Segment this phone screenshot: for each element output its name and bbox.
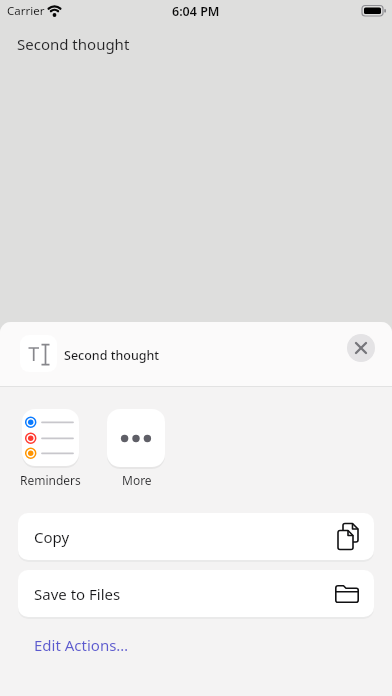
staticText: Copy: [34, 527, 70, 547]
button[interactable]: Edit Actions…: [18, 627, 374, 663]
staticText: Save to Files: [34, 584, 121, 604]
staticText: Reminders: [20, 472, 81, 488]
staticText: 6:04 PM: [172, 3, 220, 20]
staticText: Second thought: [64, 347, 160, 364]
button[interactable]: [107, 409, 165, 467]
button[interactable]: [22, 409, 79, 466]
staticText: Second thought: [17, 34, 130, 54]
button[interactable]: Save to Files: [18, 570, 374, 617]
staticText: More: [122, 472, 152, 488]
button[interactable]: [347, 334, 375, 362]
staticText: Carrier: [7, 3, 45, 19]
button[interactable]: Copy: [18, 513, 374, 560]
staticText: Edit Actions…: [34, 635, 129, 655]
